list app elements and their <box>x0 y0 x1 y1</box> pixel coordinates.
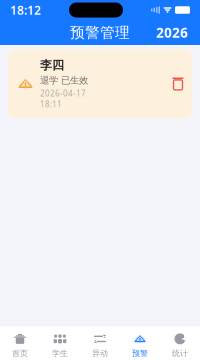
staticText: 18:12 <box>10 2 41 18</box>
button[interactable]: 2026 <box>152 23 192 42</box>
staticText: 异动 <box>92 348 108 358</box>
staticText: 2026 <box>156 24 188 41</box>
button[interactable]: 统计 <box>160 331 200 360</box>
staticText: 学生 <box>52 348 68 358</box>
staticText: 2026-04-17 18:11 <box>40 88 86 109</box>
staticText: 统计 <box>172 348 188 358</box>
button[interactable]: 删除 <box>164 71 192 96</box>
staticText: 预警管理 <box>70 23 130 41</box>
button[interactable]: 预警 <box>120 331 160 360</box>
button[interactable]: 异动 <box>80 331 120 360</box>
button[interactable]: 首页 <box>0 331 40 360</box>
button[interactable]: 李四 <box>8 49 192 118</box>
button[interactable]: 学生 <box>40 331 80 360</box>
staticText: 预警 <box>132 348 148 358</box>
staticText: 首页 <box>12 348 28 358</box>
staticText: 退学 已生效 <box>40 75 88 86</box>
staticText: 李四 <box>40 58 64 73</box>
